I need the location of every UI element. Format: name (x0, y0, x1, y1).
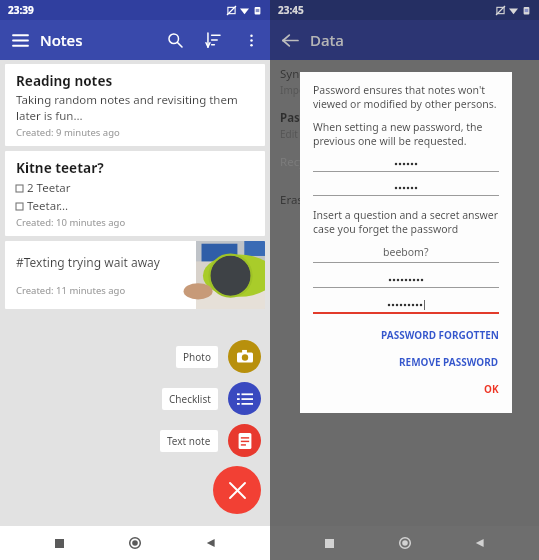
button[interactable] (313, 299, 499, 314)
staticText: beebom? (383, 245, 429, 259)
button[interactable]: Open navigation drawer (0, 20, 40, 60)
button[interactable]: Password (270, 104, 539, 148)
staticText: 2 Teetar (27, 180, 71, 196)
staticText: later is fun… (16, 108, 83, 124)
button[interactable]: Sync (270, 60, 539, 104)
staticText: Sync (280, 66, 305, 82)
button[interactable]: Home (388, 526, 422, 560)
staticText: PASSWORD FORGOTTEN (381, 328, 499, 342)
staticText: OK (484, 382, 499, 396)
button[interactable]: #Texting trying wait away (5, 241, 265, 309)
staticText: Recycle bin (280, 154, 341, 170)
staticText: #Texting trying wait away (16, 254, 160, 270)
button[interactable]: Sort (194, 21, 232, 59)
button[interactable]: Photo (176, 346, 218, 368)
staticText: Text note (167, 434, 211, 448)
button[interactable]: Checklist (228, 382, 261, 415)
button[interactable] (313, 182, 499, 196)
staticText: 23:45 (278, 3, 304, 17)
button[interactable]: More options (232, 21, 270, 59)
button[interactable]: Text note (228, 424, 261, 457)
button[interactable]: REMOVE PASSWORD (313, 355, 499, 369)
button[interactable] (313, 274, 499, 288)
staticText: Photo (183, 350, 211, 364)
staticText: Insert a question and a secret answer in (313, 208, 499, 222)
staticText: Taking random notes and revisiting them (16, 92, 238, 108)
staticText: Data (310, 30, 344, 50)
staticText: Import … (280, 83, 324, 97)
button[interactable]: Text note (160, 430, 218, 452)
staticText: 23:39 (8, 3, 34, 17)
staticText: Password (280, 110, 335, 126)
button[interactable]: Back (270, 20, 310, 60)
staticText: When setting a new password, the (313, 120, 483, 134)
button[interactable]: Recent apps (312, 526, 346, 560)
button[interactable]: Close menu (213, 466, 261, 514)
button[interactable]: Recycle bin (270, 148, 539, 186)
button[interactable]: Search (156, 21, 194, 59)
button[interactable]: Home (118, 526, 152, 560)
staticText: Reading notes (16, 72, 113, 90)
staticText: Edit … (280, 127, 309, 141)
button[interactable]: Back (463, 526, 497, 560)
staticText: Created: 9 minutes ago (16, 126, 120, 139)
staticText: previous one will be requested. (313, 134, 467, 148)
staticText: Created: 10 minutes ago (16, 216, 126, 229)
staticText: REMOVE PASSWORD (399, 355, 499, 369)
button[interactable]: PASSWORD FORGOTTEN (313, 328, 499, 342)
button[interactable] (313, 158, 499, 172)
button[interactable]: Reading notes (5, 64, 265, 146)
button[interactable]: Photo (228, 340, 261, 373)
staticText: Erase (280, 192, 310, 208)
staticText: Kitne teetar? (16, 159, 104, 177)
button[interactable]: Back (194, 526, 228, 560)
button[interactable]: Erase (270, 186, 539, 224)
button[interactable]: Kitne teetar? (5, 151, 265, 236)
button[interactable]: Checklist (162, 388, 218, 410)
staticText: case you forget the password (313, 222, 459, 236)
staticText: Password ensures that notes won't be (313, 83, 499, 97)
staticText: viewed or modified by other persons. (313, 97, 497, 111)
button[interactable]: OK (313, 382, 499, 396)
button[interactable]: beebom? (313, 245, 499, 263)
button[interactable]: Recent apps (42, 526, 76, 560)
staticText: Teetar… (27, 198, 69, 214)
staticText: Notes (40, 30, 83, 50)
staticText: Checklist (169, 392, 211, 406)
staticText: Created: 11 minutes ago (16, 284, 126, 297)
